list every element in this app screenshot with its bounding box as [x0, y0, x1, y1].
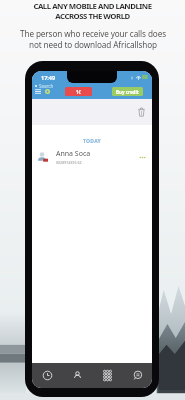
staticText: 0028914816 62	[56, 160, 82, 165]
button[interactable]: More options	[137, 152, 147, 162]
button[interactable]: Menu	[35, 88, 41, 94]
button[interactable]: Keypad	[92, 363, 122, 388]
staticText: 1¢	[76, 89, 82, 95]
staticText: Anna Soca	[56, 149, 91, 159]
staticText: Search	[39, 83, 54, 89]
staticText: 88	[142, 74, 148, 81]
button[interactable]: 1¢	[65, 87, 92, 96]
button[interactable]: Contacts	[62, 363, 92, 388]
staticText: 17:49	[41, 74, 56, 81]
button[interactable]: Anna Soca	[32, 145, 152, 169]
button[interactable]: Buy credit	[112, 87, 143, 96]
button[interactable]: Delete	[135, 106, 147, 118]
staticText: Buy credit	[116, 89, 139, 95]
button[interactable]: Recents	[32, 363, 62, 388]
staticText: CALL ANY MOBILE AND LANDLINE ACCROSS THE…	[33, 1, 152, 21]
button[interactable]: Account status	[44, 88, 50, 94]
staticText: The person who receive your calls does n…	[20, 28, 166, 51]
button[interactable]: Messages	[122, 363, 152, 388]
staticText: TODAY	[32, 138, 152, 145]
